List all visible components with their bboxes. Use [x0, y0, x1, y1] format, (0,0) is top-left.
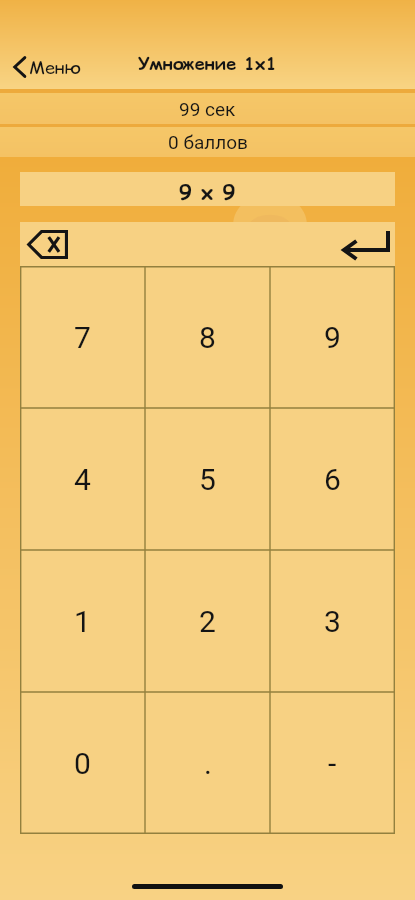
- staticText: 0: [74, 746, 91, 781]
- staticText: 9: [324, 320, 341, 355]
- staticText: 2: [199, 604, 216, 639]
- staticText: 0 баллов: [168, 131, 248, 153]
- button[interactable]: -: [270, 692, 395, 834]
- button[interactable]: 8: [145, 266, 270, 408]
- button[interactable]: 5: [145, 408, 270, 550]
- button[interactable]: 1: [20, 550, 145, 692]
- button[interactable]: Backspace: [20, 223, 78, 266]
- staticText: Умножение 1x1: [138, 51, 277, 76]
- button[interactable]: Меню: [0, 45, 96, 89]
- button[interactable]: Enter: [332, 223, 395, 265]
- staticText: 1: [74, 604, 91, 639]
- button[interactable]: 7: [20, 266, 145, 408]
- button[interactable]: 3: [270, 550, 395, 692]
- staticText: 8: [199, 320, 216, 355]
- staticText: 3: [324, 604, 341, 639]
- staticText: 4: [74, 462, 91, 497]
- staticText: Меню: [29, 55, 82, 80]
- staticText: 6: [324, 462, 341, 497]
- staticText: 99 сек: [179, 98, 236, 120]
- staticText: .: [204, 746, 212, 781]
- staticText: 7: [74, 320, 91, 355]
- button[interactable]: 2: [145, 550, 270, 692]
- button[interactable]: 6: [270, 408, 395, 550]
- button[interactable]: 9: [270, 266, 395, 408]
- staticText: 5: [199, 462, 216, 497]
- staticText: -: [328, 746, 337, 781]
- button[interactable]: 4: [20, 408, 145, 550]
- button[interactable]: 0: [20, 692, 145, 834]
- staticText: 9 x 9: [179, 178, 236, 207]
- button[interactable]: .: [145, 692, 270, 834]
